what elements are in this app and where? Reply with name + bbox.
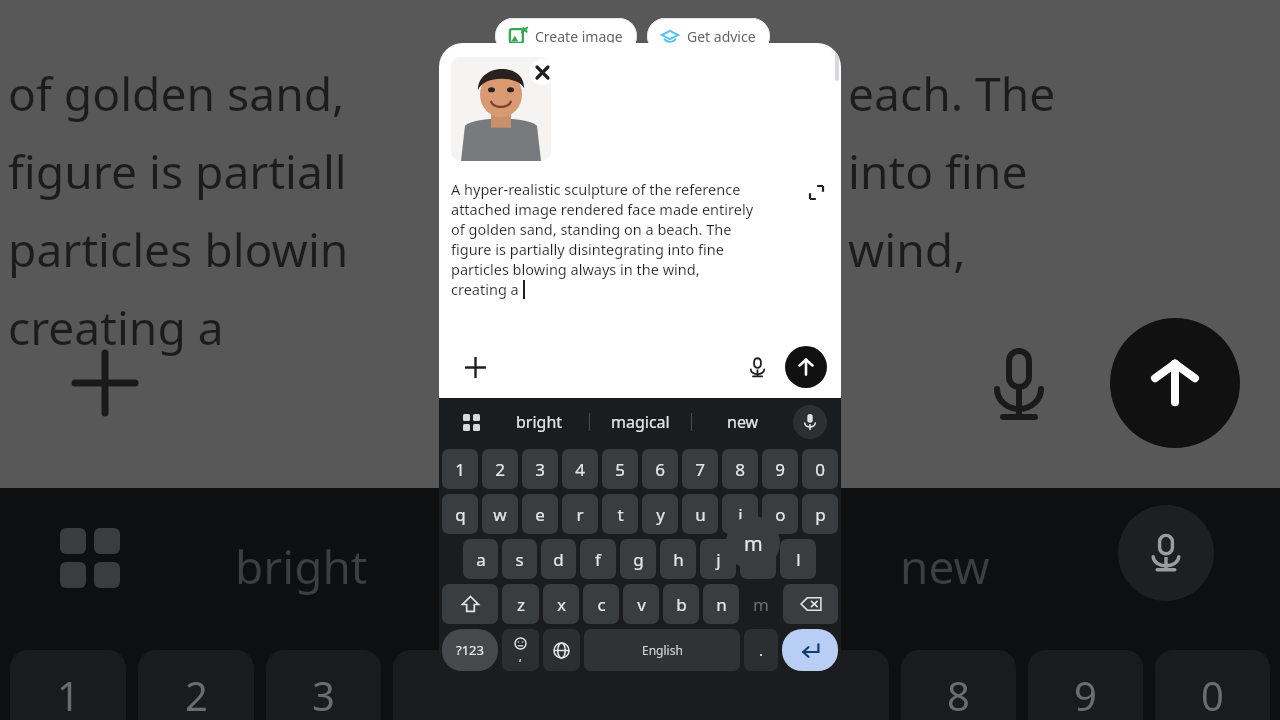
staticText: k [753,548,763,571]
button[interactable]: r [562,494,598,534]
button[interactable]: i [722,494,758,534]
staticText: x [557,593,566,616]
button[interactable]: . [744,629,778,671]
button[interactable]: 4 [562,449,598,489]
staticText: 0 [815,458,825,481]
button[interactable]: Voice input [737,347,777,387]
staticText: 1 [57,668,80,720]
button[interactable]: m [743,584,779,624]
staticText: Create image [535,27,623,46]
button[interactable]: magical [590,398,691,446]
button[interactable]: z [502,584,539,624]
button[interactable]: h [660,539,696,579]
button[interactable]: u [682,494,718,534]
button[interactable]: Get advice [647,18,770,54]
button[interactable]: y [642,494,678,534]
staticText: y [656,503,665,526]
staticText: o [775,503,786,526]
staticText: d [553,548,564,571]
button[interactable]: j [700,539,736,579]
button[interactable]: 9 [762,449,798,489]
button[interactable]: Toolbar [453,404,489,440]
button[interactable]: w [482,494,518,534]
staticText: n [716,593,727,616]
button[interactable]: 7 [682,449,718,489]
button[interactable]: d [541,539,576,579]
button[interactable]: o [762,494,798,534]
button[interactable]: 5 [602,449,638,489]
staticText: b [676,593,687,616]
button[interactable] [451,57,551,161]
button[interactable]: Add attachment [457,349,493,385]
button[interactable]: s [502,539,537,579]
staticText: of golden sand, [8,62,345,125]
button[interactable]: p [802,494,838,534]
staticText: 2 [495,458,505,481]
button[interactable]: e [522,494,558,534]
button[interactable]: 2 [482,449,518,489]
staticText: i [738,503,743,526]
button[interactable]: Remove image [529,59,555,85]
staticText: l [796,548,801,571]
button[interactable]: 3 [522,449,558,489]
button[interactable]: Expand [805,181,827,203]
staticText: m [744,530,763,557]
staticText: q [455,503,466,526]
button[interactable]: Change language [543,629,580,671]
staticText: new [727,411,759,433]
button[interactable]: ?123 [442,629,498,671]
staticText: 7 [695,458,705,481]
button[interactable]: g [620,539,656,579]
button[interactable]: Backspace [783,584,838,624]
staticText: z [517,593,525,616]
staticText: 3 [535,458,545,481]
button[interactable]: Shift [442,584,498,624]
button[interactable]: l [780,539,816,579]
staticText: bright [516,411,563,433]
button[interactable]: x [543,584,579,624]
button[interactable]: Send [785,346,827,388]
staticText: a [476,548,486,571]
staticText: new [900,535,990,598]
button[interactable]: v [623,584,659,624]
button[interactable]: Create image [495,18,637,54]
button[interactable]: f [580,539,616,579]
button[interactable]: b [663,584,699,624]
staticText: 9 [1074,668,1097,720]
button[interactable]: c [583,584,619,624]
staticText: t [617,503,624,526]
staticText: Get advice [687,27,756,46]
staticText: of golden sand, standing on a beach. The [451,219,732,239]
staticText: p [815,503,826,526]
button[interactable]: 1 [442,449,478,489]
button[interactable]: Enter [782,629,838,671]
button[interactable]: 6 [642,449,678,489]
staticText: w [493,503,507,526]
button[interactable]: 0 [802,449,838,489]
staticText: c [597,593,606,616]
staticText: 0 [1201,668,1224,720]
staticText: . [759,640,764,660]
button[interactable]: Voice typing [793,405,827,439]
staticText: wind, [848,218,966,281]
button[interactable]: a [463,539,498,579]
button[interactable]: bright [489,398,589,446]
staticText: g [633,548,644,571]
button[interactable]: t [602,494,638,534]
staticText: v [637,593,646,616]
staticText: creating a [451,279,523,299]
staticText: each. The [848,62,1056,125]
button[interactable]: k [740,539,776,579]
button[interactable]: q [442,494,478,534]
staticText: A hyper-realistic sculpture of the refer… [451,179,741,199]
button[interactable]: Emoji [502,629,539,671]
staticText: ?123 [456,641,484,659]
staticText: u [695,503,706,526]
button[interactable]: English [584,629,740,671]
button[interactable]: new [692,398,793,446]
staticText: 9 [775,458,785,481]
staticText: 8 [947,668,970,720]
button[interactable]: 8 [722,449,758,489]
staticText: h [673,548,684,571]
button[interactable]: n [703,584,739,624]
